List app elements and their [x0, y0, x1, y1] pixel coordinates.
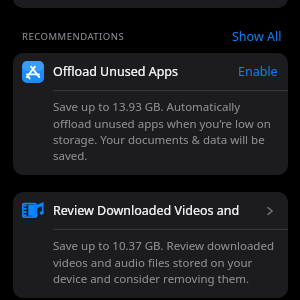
staticText: Save up to 13.93 GB. Automatically offlo…: [53, 99, 276, 163]
staticText: Save up to 10.37 GB. Review downloaded v…: [53, 238, 276, 286]
staticText: Enable: [238, 63, 278, 80]
staticText: RECOMMENDATIONS: [22, 30, 125, 43]
staticText: Show All: [232, 28, 282, 45]
staticText: Offload Unused Apps: [53, 63, 179, 80]
button[interactable]: Review Downloaded Videos and Audios: [13, 192, 288, 298]
button[interactable]: [13, 0, 288, 8]
button[interactable]: Show All: [232, 28, 282, 45]
button[interactable]: Enable: [238, 63, 278, 80]
staticText: Review Downloaded Videos and Audios: [53, 202, 256, 219]
button[interactable]: Offload Unused Apps: [13, 53, 288, 175]
button[interactable]: Open review downloads: [262, 203, 278, 219]
